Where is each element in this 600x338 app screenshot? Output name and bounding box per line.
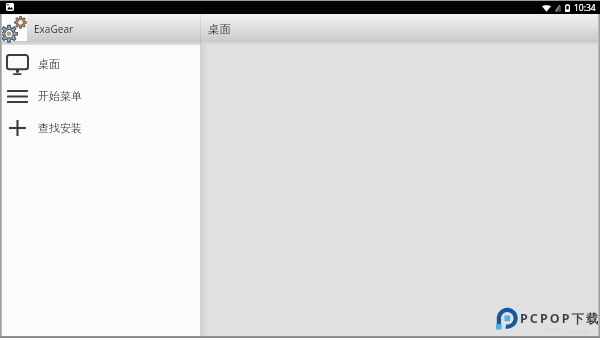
button[interactable]: 桌面 [0, 48, 200, 80]
staticText: 开始菜单 [38, 89, 82, 103]
staticText: PCPOP下载 [520, 310, 600, 327]
staticText: ExaGear [34, 22, 74, 36]
staticText: 10:34 [574, 2, 596, 14]
button[interactable]: 桌面 [203, 14, 237, 45]
other: Screenshot [6, 3, 14, 11]
button[interactable]: 开始菜单 [0, 80, 200, 112]
button[interactable]: 查找安装 [0, 112, 200, 144]
button[interactable]: ExaGear [29, 14, 89, 45]
staticText: 桌面 [38, 57, 60, 71]
staticText: 查找安装 [38, 121, 82, 135]
staticText: 桌面 [208, 22, 231, 36]
button[interactable]: Open navigation drawer [2, 15, 27, 41]
